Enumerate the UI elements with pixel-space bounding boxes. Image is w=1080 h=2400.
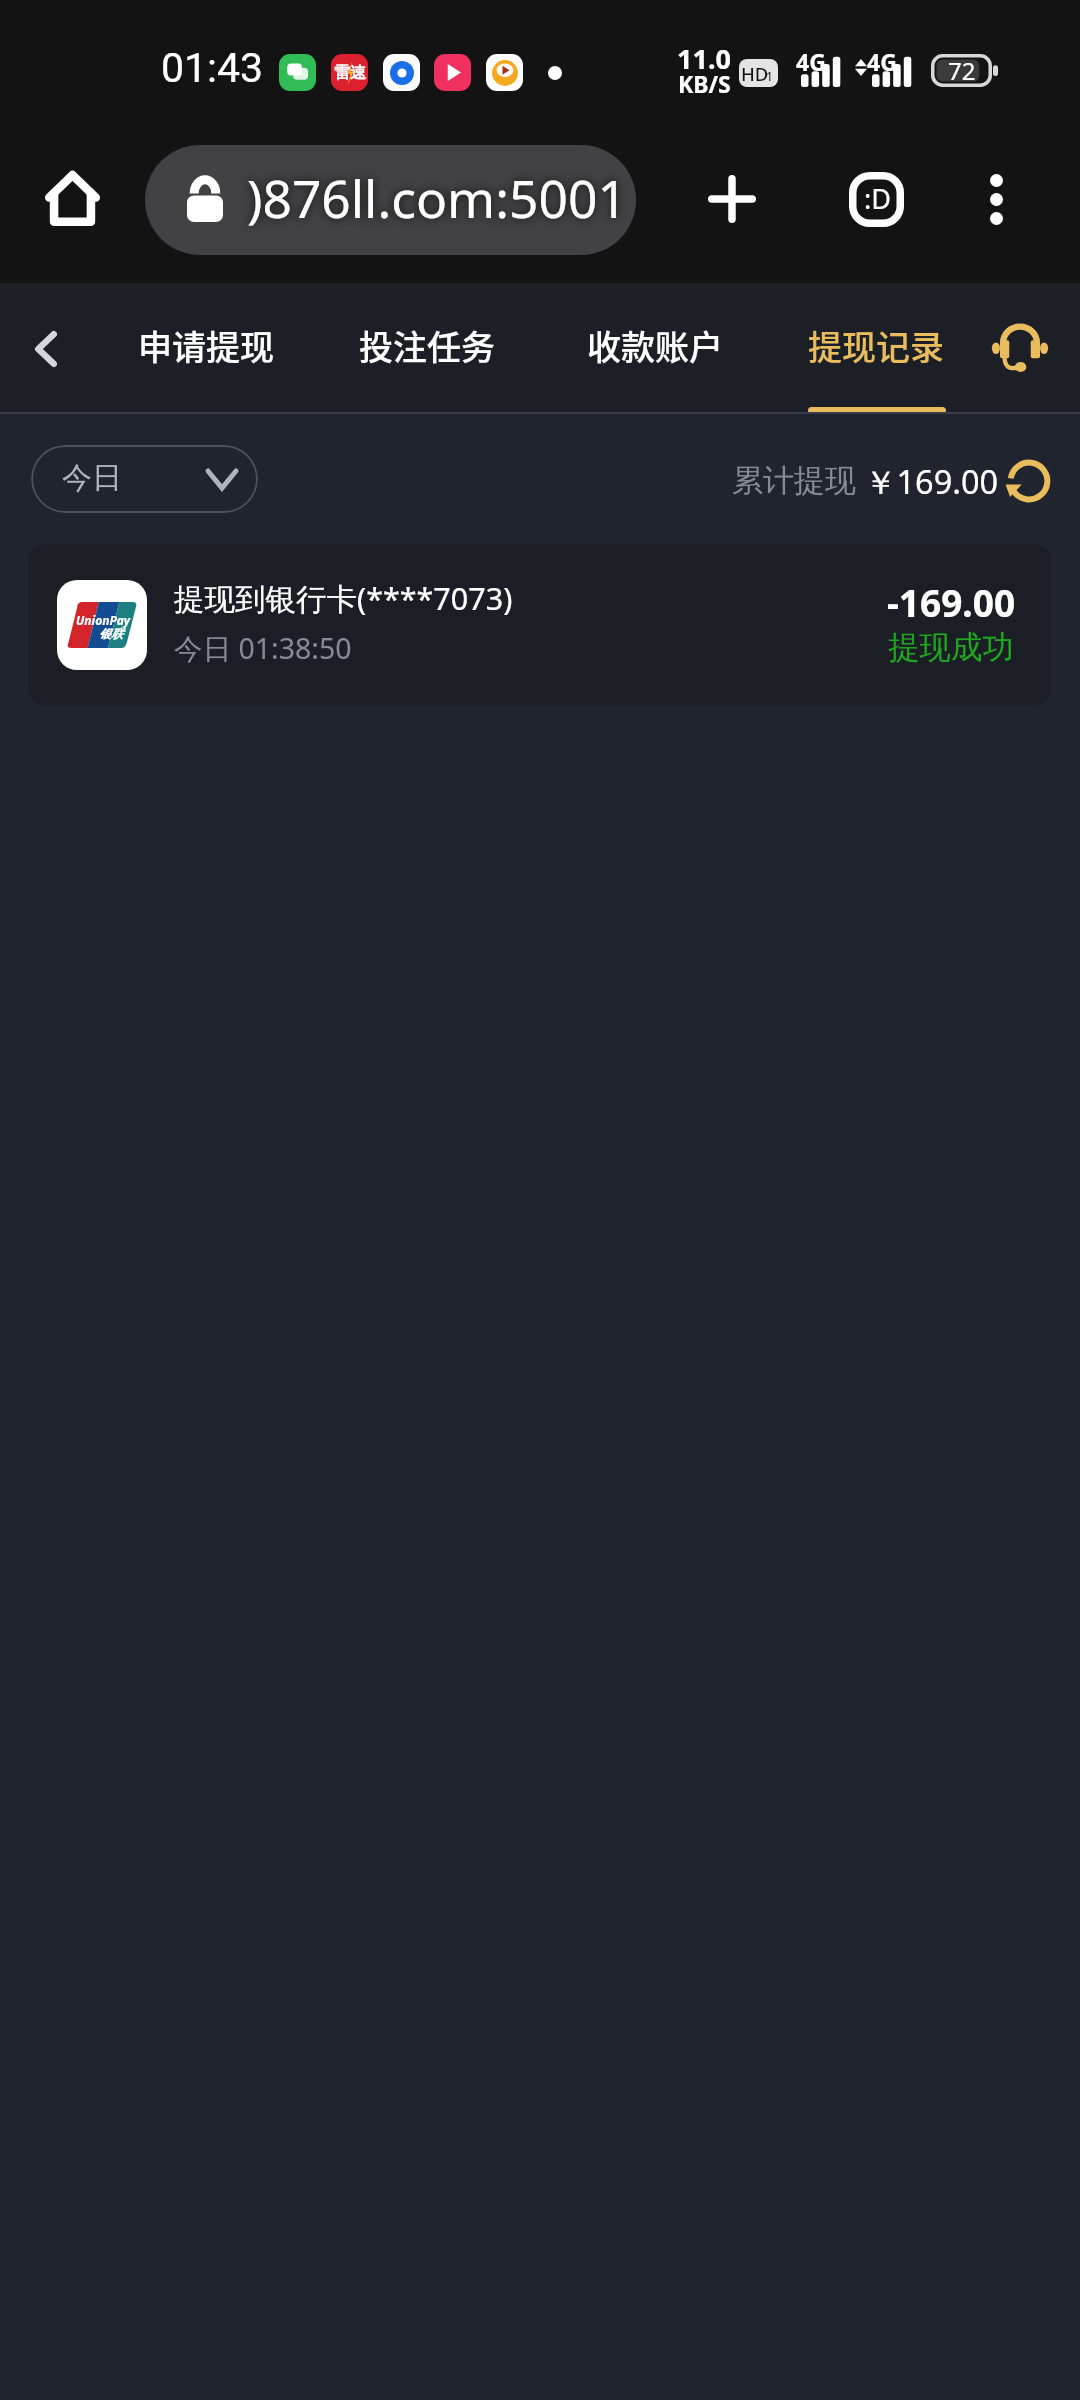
button[interactable]: 收款账户 [571, 283, 739, 413]
staticText: 提现记录 [808, 321, 944, 370]
staticText: 11.0 [677, 40, 731, 77]
button[interactable]: 申请提现 [122, 283, 290, 413]
staticText: 01:43 [161, 44, 264, 92]
staticText: 银联 [99, 626, 123, 641]
button[interactable]: New tab [687, 154, 777, 244]
staticText: HD [741, 61, 769, 86]
staticText: ￥169.00 [864, 459, 999, 503]
staticText: 今日 [62, 459, 122, 497]
staticText: 雷速 [334, 63, 366, 83]
button[interactable]: Customer service [991, 317, 1049, 375]
staticText: KB/S [678, 68, 731, 99]
button[interactable]: )876ll.com:5001 [145, 145, 636, 255]
button[interactable]: 提现记录 [792, 283, 960, 413]
staticText: 投注任务 [359, 321, 495, 370]
button[interactable]: Back [10, 313, 82, 385]
staticText: 提现成功 [888, 628, 1014, 668]
staticText: 4G [867, 46, 897, 77]
staticText: )876ll.com:5001 [247, 163, 627, 233]
staticText: 提现到银行卡(****7073) [174, 577, 513, 619]
staticText: 今日 01:38:50 [174, 629, 352, 668]
staticText: :D [864, 180, 891, 217]
staticText: 申请提现 [138, 321, 274, 370]
button[interactable]: Tabs [831, 154, 921, 244]
staticText: 72 [948, 54, 976, 87]
button[interactable]: More options [951, 154, 1041, 244]
button[interactable]: UnionPay [28, 544, 1051, 705]
button[interactable]: Home [27, 152, 117, 242]
button[interactable]: Refresh [1005, 457, 1053, 505]
staticText: 1 [766, 68, 773, 84]
button[interactable]: 今日 [31, 445, 258, 513]
staticText: 收款账户 [587, 321, 723, 370]
staticText: -169.00 [887, 577, 1016, 627]
staticText: 4G [796, 46, 826, 77]
staticText: UnionPay [76, 612, 131, 628]
button[interactable]: 投注任务 [343, 283, 511, 413]
staticText: 累计提现 [732, 461, 856, 500]
